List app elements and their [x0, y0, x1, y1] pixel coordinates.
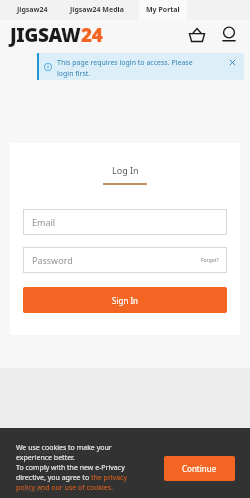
staticText: 24: [81, 22, 103, 48]
staticText: experience better.: [16, 453, 75, 463]
button[interactable]: Password: [23, 247, 227, 273]
button[interactable]: Jigsaw24 Media: [63, 0, 131, 20]
button[interactable]: the privacy: [91, 473, 128, 483]
staticText: Jigsaw24: [17, 5, 48, 15]
button[interactable]: JIGSAW: [10, 22, 103, 48]
staticText: JIGSAW: [10, 22, 81, 48]
staticText: Jigsaw24 Links: [19, 447, 70, 457]
staticText: directive, you agree to: [16, 473, 91, 483]
staticText: login first.: [57, 69, 91, 79]
button[interactable]: Forgot?: [193, 253, 227, 268]
staticText: Email: [32, 216, 56, 228]
staticText: Reviews: [22, 486, 45, 494]
button[interactable]: Sign In: [23, 287, 227, 313]
staticText: Jigsaw24 Media: [70, 5, 124, 15]
staticText: To comply with the new e-Privacy: [16, 463, 125, 473]
button[interactable]: Jigsaw24: [10, 0, 55, 20]
staticText: Log In: [112, 164, 139, 176]
staticText: Password: [32, 254, 73, 266]
button[interactable]: policy and our use of cookies.: [16, 483, 114, 493]
button[interactable]: Log In: [91, 162, 159, 187]
staticText: This page requires login to access. Plea…: [57, 58, 193, 68]
staticText: Sign In: [112, 295, 139, 306]
button[interactable]: My Portal: [139, 0, 187, 20]
button[interactable]: Email: [23, 209, 227, 235]
button[interactable]: Basket: [186, 24, 208, 46]
button[interactable]: Close: [228, 58, 237, 67]
staticText: Continue: [182, 463, 217, 474]
staticText: My Portal: [146, 5, 180, 15]
button[interactable]: Account: [218, 24, 240, 46]
button[interactable]: Continue: [164, 456, 235, 481]
staticText: We use cookies to make your: [16, 443, 112, 453]
